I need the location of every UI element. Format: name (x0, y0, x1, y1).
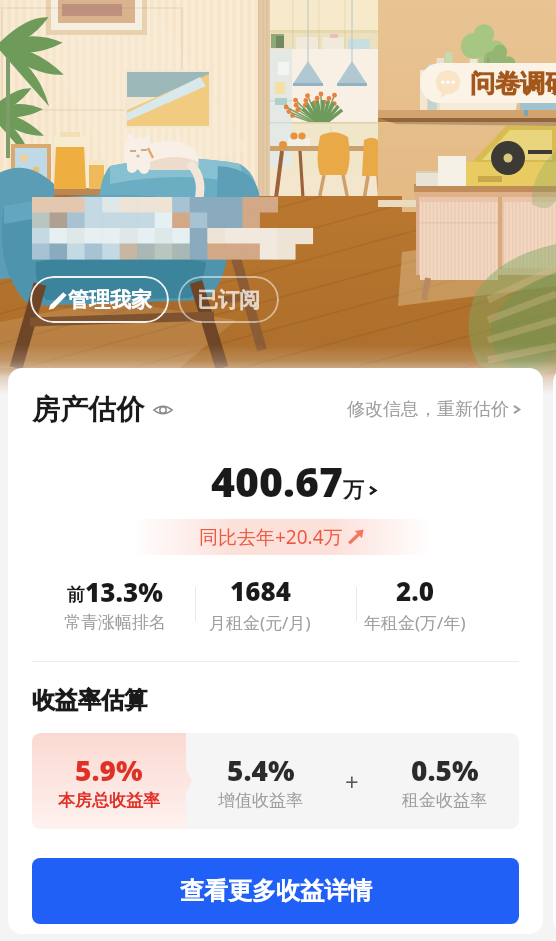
staticText: 5.9% (75, 751, 143, 789)
staticText: 2.0 (396, 573, 434, 608)
staticText: 1684 (230, 573, 291, 608)
staticText: 房产估价 (32, 392, 144, 427)
staticText: 万 (343, 477, 364, 503)
staticText: 收益率估算 (32, 686, 147, 715)
staticText: 修改信息，重新估价 (347, 398, 509, 421)
staticText: 月租金(元/月) (209, 611, 311, 634)
staticText: 0.5% (411, 751, 479, 789)
button[interactable]: Visibility (153, 400, 173, 420)
button[interactable]: 5.9% (32, 733, 186, 829)
staticText: 400.67 (211, 453, 343, 509)
button[interactable]: 0.5% (369, 733, 519, 829)
staticText: 增值收益率 (218, 790, 303, 811)
staticText: 同比去年+20.4万 (199, 524, 343, 550)
staticText: 前 (67, 584, 85, 607)
staticText: 5.4% (227, 751, 295, 789)
staticText: 13.3% (85, 574, 163, 609)
staticText: 本房总收益率 (58, 790, 160, 811)
button[interactable]: 问卷调研 (420, 63, 556, 103)
staticText: 已订阅 (197, 287, 260, 313)
button[interactable]: 已订阅 (178, 276, 279, 323)
staticText: 年租金(万/年) (364, 611, 466, 634)
staticText: 常青涨幅排名 (64, 612, 166, 633)
staticText: + (345, 765, 359, 798)
staticText: 问卷调研 (470, 68, 556, 99)
button[interactable]: 修改信息，重新估价 (347, 398, 523, 421)
button[interactable]: 查看更多收益详情 (32, 858, 519, 924)
button[interactable]: 管理我家 (30, 276, 169, 323)
button[interactable]: 5.4% (186, 733, 335, 829)
staticText: 租金收益率 (402, 790, 487, 811)
staticText: 管理我家 (68, 287, 152, 313)
button[interactable]: 400.67 (27, 453, 543, 509)
staticText: 查看更多收益详情 (180, 876, 372, 906)
